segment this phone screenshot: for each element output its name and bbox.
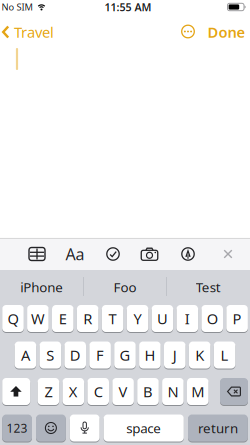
staticText: 11:55 AM xyxy=(104,0,151,14)
staticText: A xyxy=(21,345,30,365)
button[interactable]: N xyxy=(162,377,184,405)
staticText: B xyxy=(143,382,153,401)
staticText: O xyxy=(207,309,218,328)
button[interactable]: 123 xyxy=(2,414,32,442)
button[interactable]: Z xyxy=(38,377,59,405)
button[interactable]: iPhone xyxy=(2,274,82,300)
button[interactable]: G xyxy=(114,341,136,369)
button[interactable]: Delete xyxy=(220,377,248,405)
button[interactable]: Shift xyxy=(2,377,30,405)
button[interactable]: K xyxy=(189,341,210,369)
button[interactable]: Q xyxy=(2,304,24,332)
staticText: Test xyxy=(196,278,221,296)
button[interactable]: Dictation xyxy=(70,414,100,442)
staticText: Aa xyxy=(65,243,84,265)
button[interactable]: Y xyxy=(127,304,148,332)
button[interactable]: More xyxy=(181,24,195,38)
staticText: Foo xyxy=(113,278,136,296)
staticText: E xyxy=(59,309,67,328)
staticText: No SIM xyxy=(1,1,32,13)
staticText: space xyxy=(126,419,161,437)
staticText: L xyxy=(221,345,229,365)
button[interactable]: Emoji xyxy=(36,414,66,442)
staticText: X xyxy=(69,382,78,401)
button[interactable]: space xyxy=(104,414,184,442)
staticText: return xyxy=(198,419,238,437)
staticText: D xyxy=(70,345,81,365)
staticText: N xyxy=(167,382,178,401)
button[interactable]: T xyxy=(102,304,123,332)
button[interactable]: B xyxy=(137,377,159,405)
button[interactable]: C xyxy=(87,377,109,405)
staticText: M xyxy=(191,382,204,401)
staticText: G xyxy=(119,345,130,365)
button[interactable]: E xyxy=(52,304,74,332)
button[interactable]: R xyxy=(77,304,98,332)
button[interactable]: F xyxy=(89,341,111,369)
button[interactable]: V xyxy=(112,377,134,405)
staticText: F xyxy=(96,345,104,365)
staticText: S xyxy=(46,345,54,365)
button[interactable]: P xyxy=(226,304,248,332)
staticText: Z xyxy=(44,382,52,401)
button[interactable]: A xyxy=(15,341,36,369)
button[interactable]: X xyxy=(62,377,84,405)
button[interactable]: Markup xyxy=(181,247,195,261)
staticText: I xyxy=(185,309,190,328)
staticText: J xyxy=(173,345,177,365)
button[interactable]: Checklist xyxy=(106,247,120,261)
button[interactable]: Text format xyxy=(65,243,84,265)
button[interactable]: Add table xyxy=(29,247,45,260)
button[interactable]: Camera xyxy=(141,247,158,260)
button[interactable]: O xyxy=(201,304,223,332)
staticText: P xyxy=(233,309,242,328)
staticText: Y xyxy=(133,309,141,328)
button[interactable]: return xyxy=(188,414,248,442)
staticText: C xyxy=(94,382,103,401)
button[interactable]: L xyxy=(214,341,235,369)
staticText: U xyxy=(157,309,168,328)
button[interactable]: I xyxy=(176,304,198,332)
staticText: Travel xyxy=(14,22,54,42)
button[interactable]: Test xyxy=(168,274,248,300)
staticText: Done xyxy=(207,22,245,42)
staticText: K xyxy=(195,345,204,365)
staticText: 123 xyxy=(7,420,28,436)
staticText: H xyxy=(144,345,155,365)
button[interactable]: Travel xyxy=(2,22,54,42)
button[interactable]: D xyxy=(64,341,86,369)
staticText: T xyxy=(109,309,117,328)
staticText: W xyxy=(31,309,45,328)
button[interactable]: Dismiss keyboard xyxy=(223,249,233,259)
button[interactable]: M xyxy=(187,377,209,405)
staticText: V xyxy=(119,382,128,401)
staticText: Q xyxy=(7,309,18,328)
staticText: iPhone xyxy=(20,278,63,296)
button[interactable]: Done xyxy=(207,22,245,42)
staticText: R xyxy=(83,309,92,328)
button[interactable]: U xyxy=(152,304,173,332)
button[interactable]: J xyxy=(164,341,186,369)
button[interactable]: W xyxy=(27,304,49,332)
button[interactable]: H xyxy=(139,341,161,369)
button[interactable]: S xyxy=(39,341,61,369)
button[interactable]: Foo xyxy=(85,274,165,300)
